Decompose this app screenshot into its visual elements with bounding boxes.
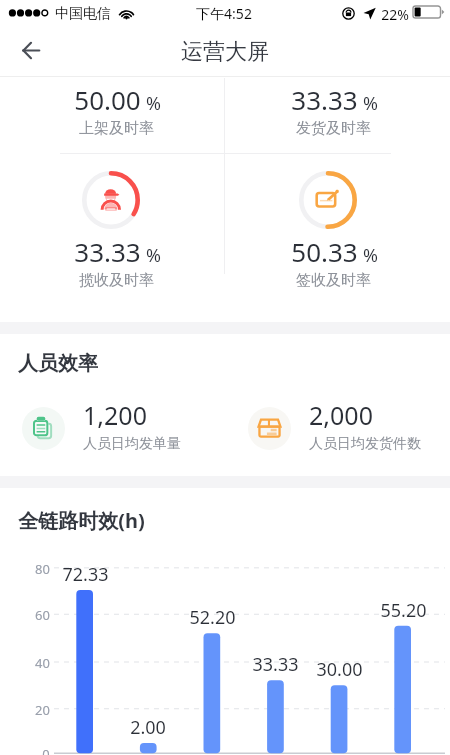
staticText: 全链路时效(h) (18, 507, 145, 534)
staticText: 发货及时率 (296, 119, 371, 138)
staticText: 22% (381, 5, 409, 24)
staticText: 33.33 (291, 82, 358, 117)
staticText: 中国电信 (55, 5, 111, 23)
staticText: 33.33 (252, 652, 299, 677)
staticText: 人员效率 (18, 351, 98, 376)
staticText: 运营大屏 (181, 38, 269, 66)
button[interactable]: 2,000 (248, 407, 421, 462)
staticText: 人员日均发货件数 (309, 435, 421, 453)
staticText: 72.33 (62, 562, 109, 587)
staticText: 50.00 (74, 82, 141, 117)
button[interactable]: Back (8, 28, 53, 73)
staticText: 60 (35, 606, 50, 624)
staticText: 40 (35, 654, 50, 672)
staticText: % (146, 243, 161, 268)
staticText: 50.33 (291, 234, 358, 269)
staticText: 2,000 (309, 398, 373, 432)
staticText: 签收及时率 (296, 271, 371, 290)
staticText: % (363, 243, 378, 268)
staticText: 20 (35, 701, 50, 719)
staticText: 下午4:52 (196, 4, 252, 23)
staticText: 揽收及时率 (79, 271, 154, 290)
staticText: 80 (35, 560, 50, 578)
staticText: 52.20 (189, 605, 236, 630)
staticText: 33.33 (74, 234, 141, 269)
staticText: 上架及时率 (79, 119, 154, 138)
staticText: % (363, 91, 378, 116)
staticText: % (146, 91, 161, 116)
button[interactable]: 1,200 (22, 407, 181, 462)
staticText: 1,200 (83, 398, 147, 432)
staticText: 30.00 (316, 657, 363, 682)
staticText: 2.00 (130, 715, 166, 740)
staticText: 0 (42, 745, 50, 755)
staticText: 55.20 (380, 598, 427, 623)
staticText: 人员日均发单量 (83, 435, 181, 453)
